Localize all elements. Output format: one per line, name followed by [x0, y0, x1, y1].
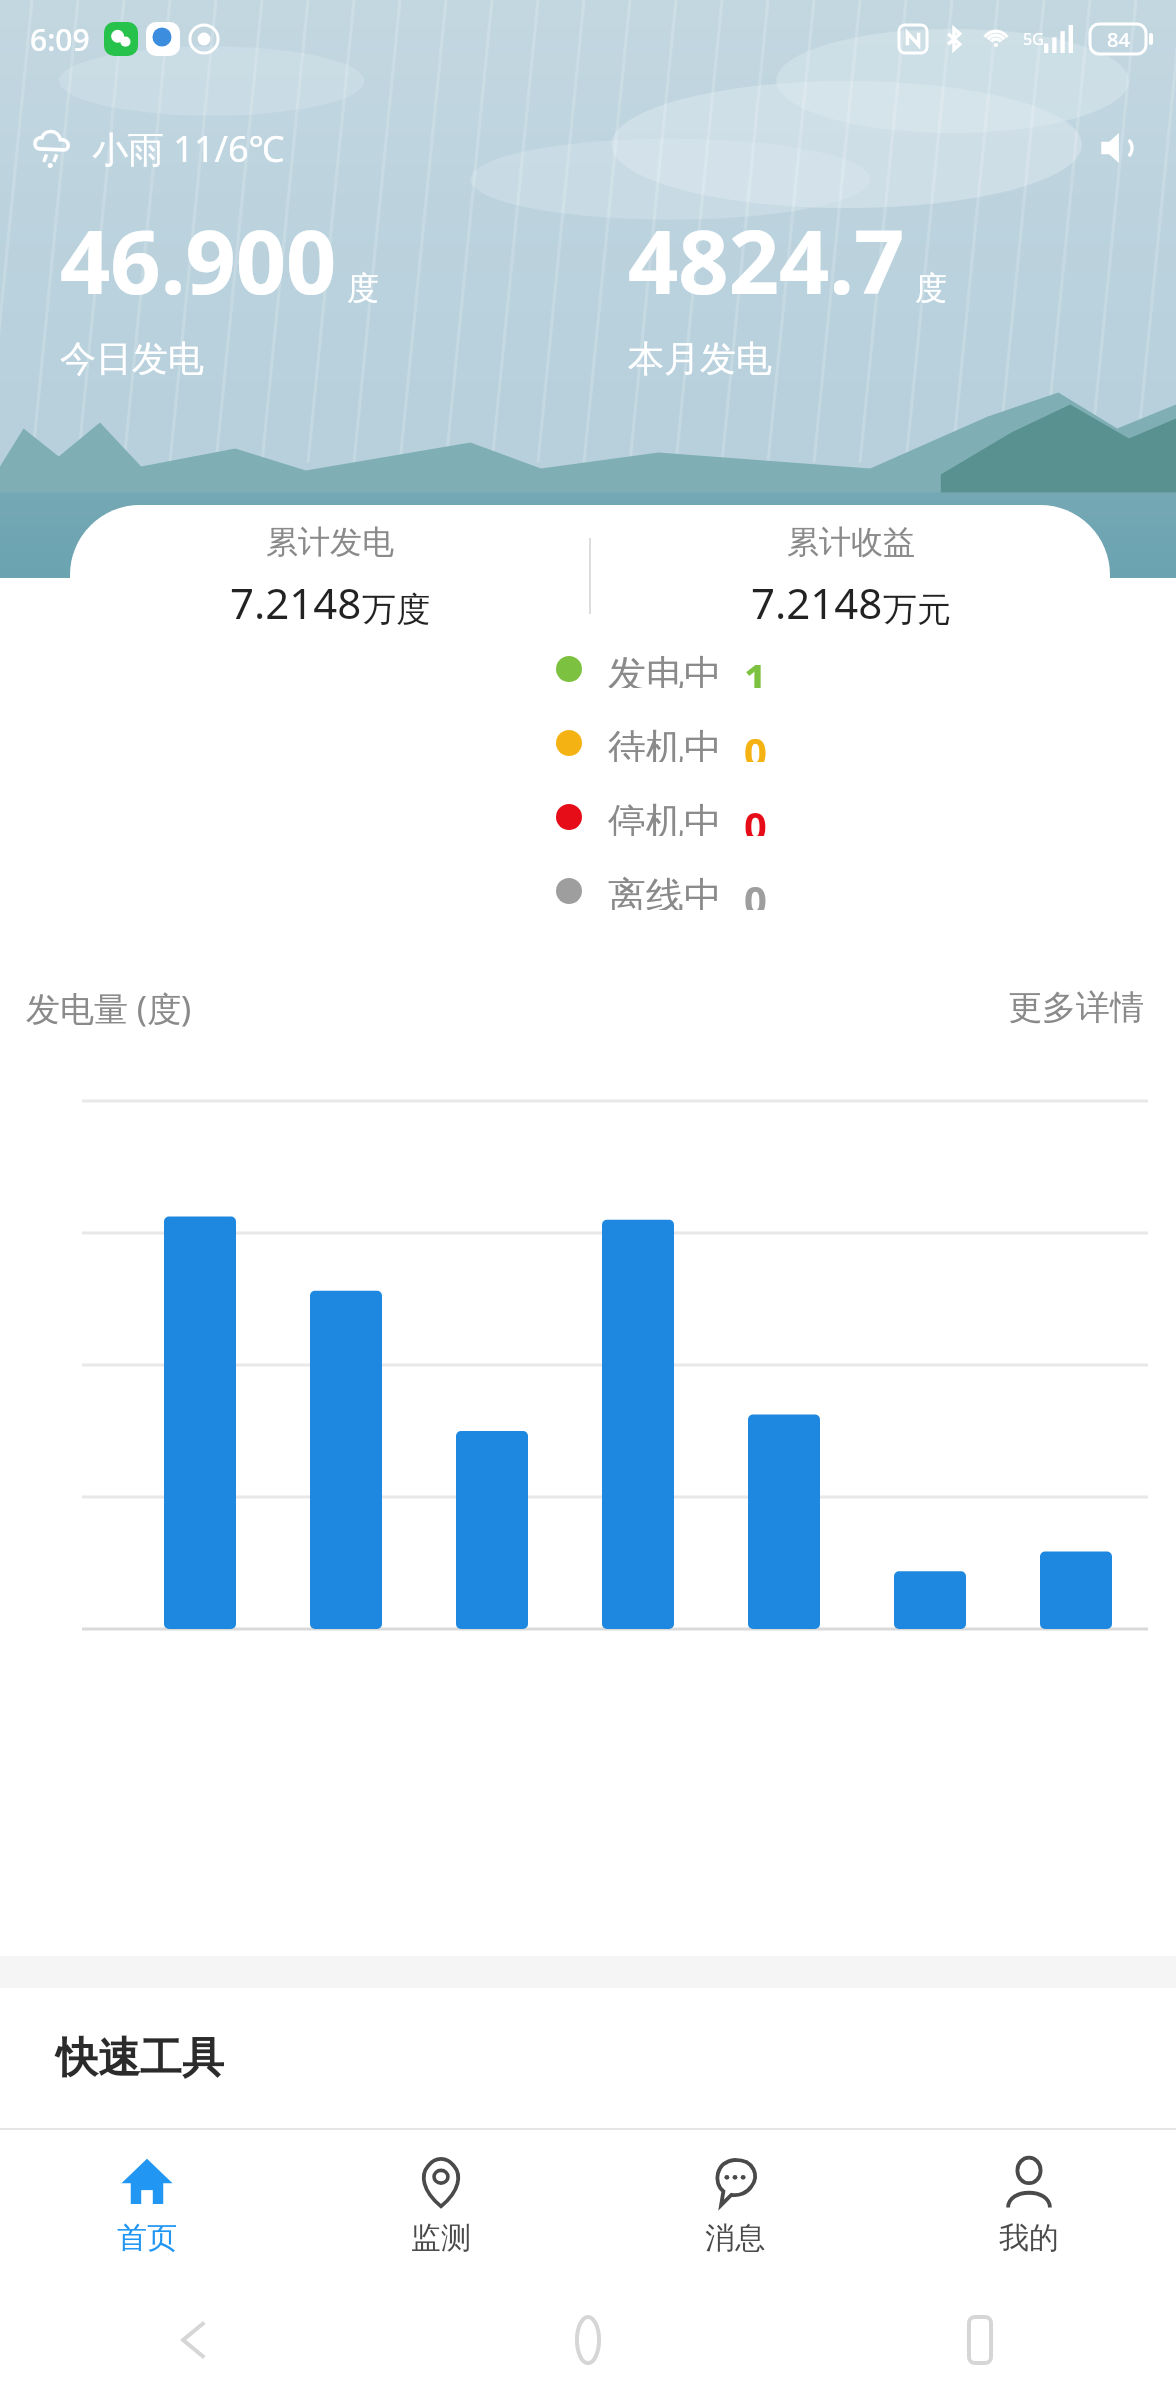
staticText: 4824.7 [628, 200, 905, 320]
staticText: 发电中 [608, 650, 722, 688]
staticText: 46.900 [60, 200, 337, 320]
button[interactable]: 我的 [882, 2130, 1176, 2280]
staticText: 离线中 [608, 872, 722, 910]
button[interactable]: 待机中 [0, 724, 1176, 762]
staticText: 发电量 (度) [26, 985, 192, 1031]
staticText: 快速工具 [56, 2032, 224, 2085]
staticText: 度 [915, 268, 947, 308]
staticText: 累计发电 [266, 522, 394, 562]
staticText: 0 [744, 872, 767, 910]
staticText: 我的 [999, 2219, 1059, 2257]
staticText: 0 [744, 724, 767, 762]
staticText: 更多详情 [1008, 986, 1144, 1029]
staticText: 本月发电 [628, 336, 772, 381]
staticText: 7.2148 [751, 574, 883, 631]
button[interactable]: 发电中 [0, 650, 1176, 688]
button[interactable]: Sound [1090, 120, 1146, 176]
staticText: 84 [1107, 26, 1130, 53]
button[interactable]: 首页 [0, 2130, 294, 2280]
staticText: 待机中 [608, 724, 722, 762]
staticText: 7.2148 [230, 574, 362, 631]
staticText: 度 [347, 268, 379, 308]
button[interactable]: 更多详情 [1002, 980, 1150, 1035]
staticText: 首页 [117, 2219, 177, 2257]
button[interactable]: 监测 [294, 2130, 588, 2280]
staticText: 累计收益 [787, 522, 915, 562]
staticText: 今日发电 [60, 336, 204, 381]
staticText: 万度 [362, 588, 430, 631]
staticText: 0 [744, 798, 767, 836]
staticText: 5G [1023, 28, 1044, 50]
staticText: 6:09 [30, 19, 90, 60]
button[interactable]: 离线中 [0, 872, 1176, 910]
button[interactable]: 停机中 [0, 798, 1176, 836]
button[interactable]: 消息 [588, 2130, 882, 2280]
staticText: 消息 [705, 2219, 765, 2257]
staticText: 小雨 11/6℃ [92, 124, 285, 173]
staticText: 1 [744, 650, 767, 688]
staticText: 监测 [411, 2219, 471, 2257]
staticText: 万元 [883, 588, 951, 631]
button[interactable]: 累计发电 [70, 505, 1110, 647]
staticText: 停机中 [608, 798, 722, 836]
